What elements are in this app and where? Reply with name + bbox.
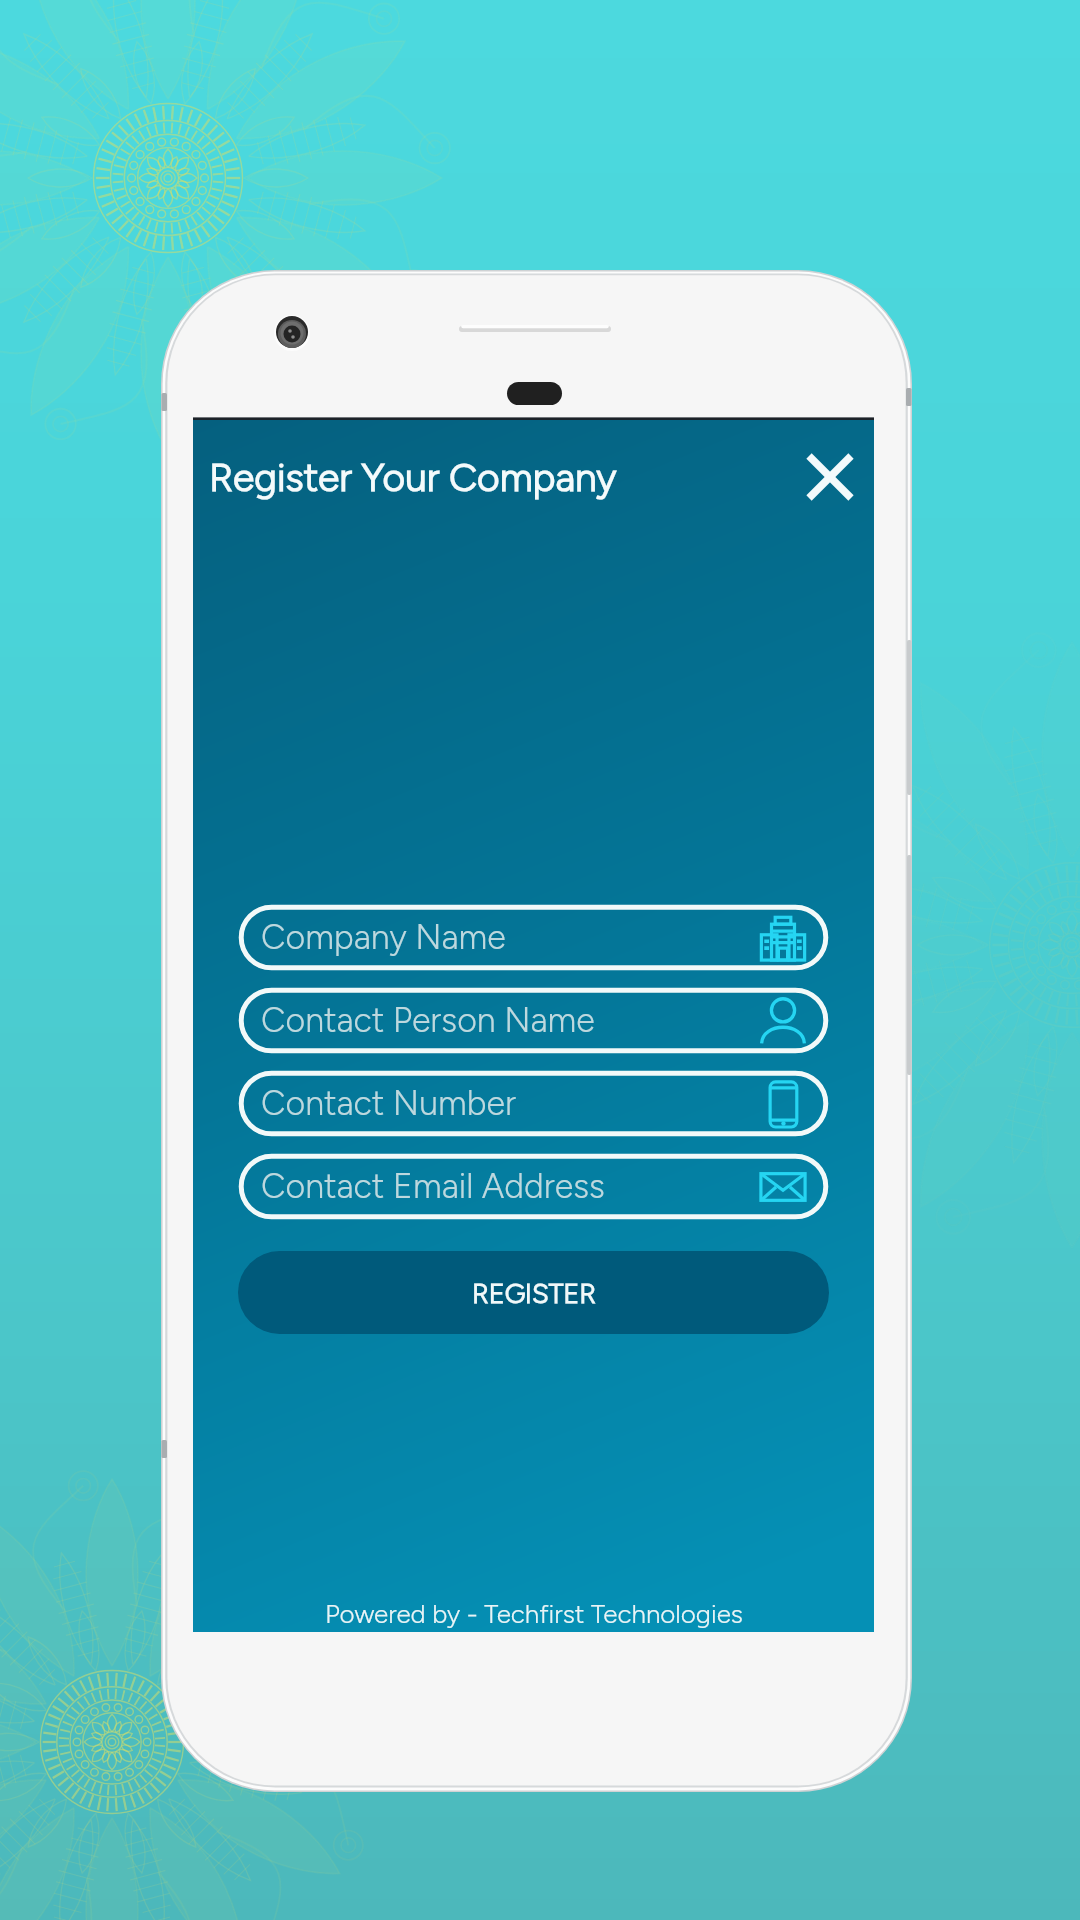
staticText: Register Your Company <box>209 454 617 501</box>
staticText: Contact Email Address <box>261 1166 605 1207</box>
staticText: Powered by - Techfirst Technologies <box>325 1598 743 1629</box>
button[interactable]: Contact Number <box>238 1070 829 1137</box>
button[interactable]: REGISTER <box>238 1251 829 1334</box>
staticText: REGISTER <box>472 1277 596 1309</box>
staticText: Contact Number <box>261 1083 516 1124</box>
button[interactable]: Company Name <box>238 904 829 971</box>
staticText: Contact Person Name <box>261 1000 595 1041</box>
button[interactable]: Close <box>793 440 867 514</box>
staticText: Company Name <box>261 917 506 958</box>
button[interactable]: Contact Email Address <box>238 1153 829 1220</box>
button[interactable]: Contact Person Name <box>238 987 829 1054</box>
